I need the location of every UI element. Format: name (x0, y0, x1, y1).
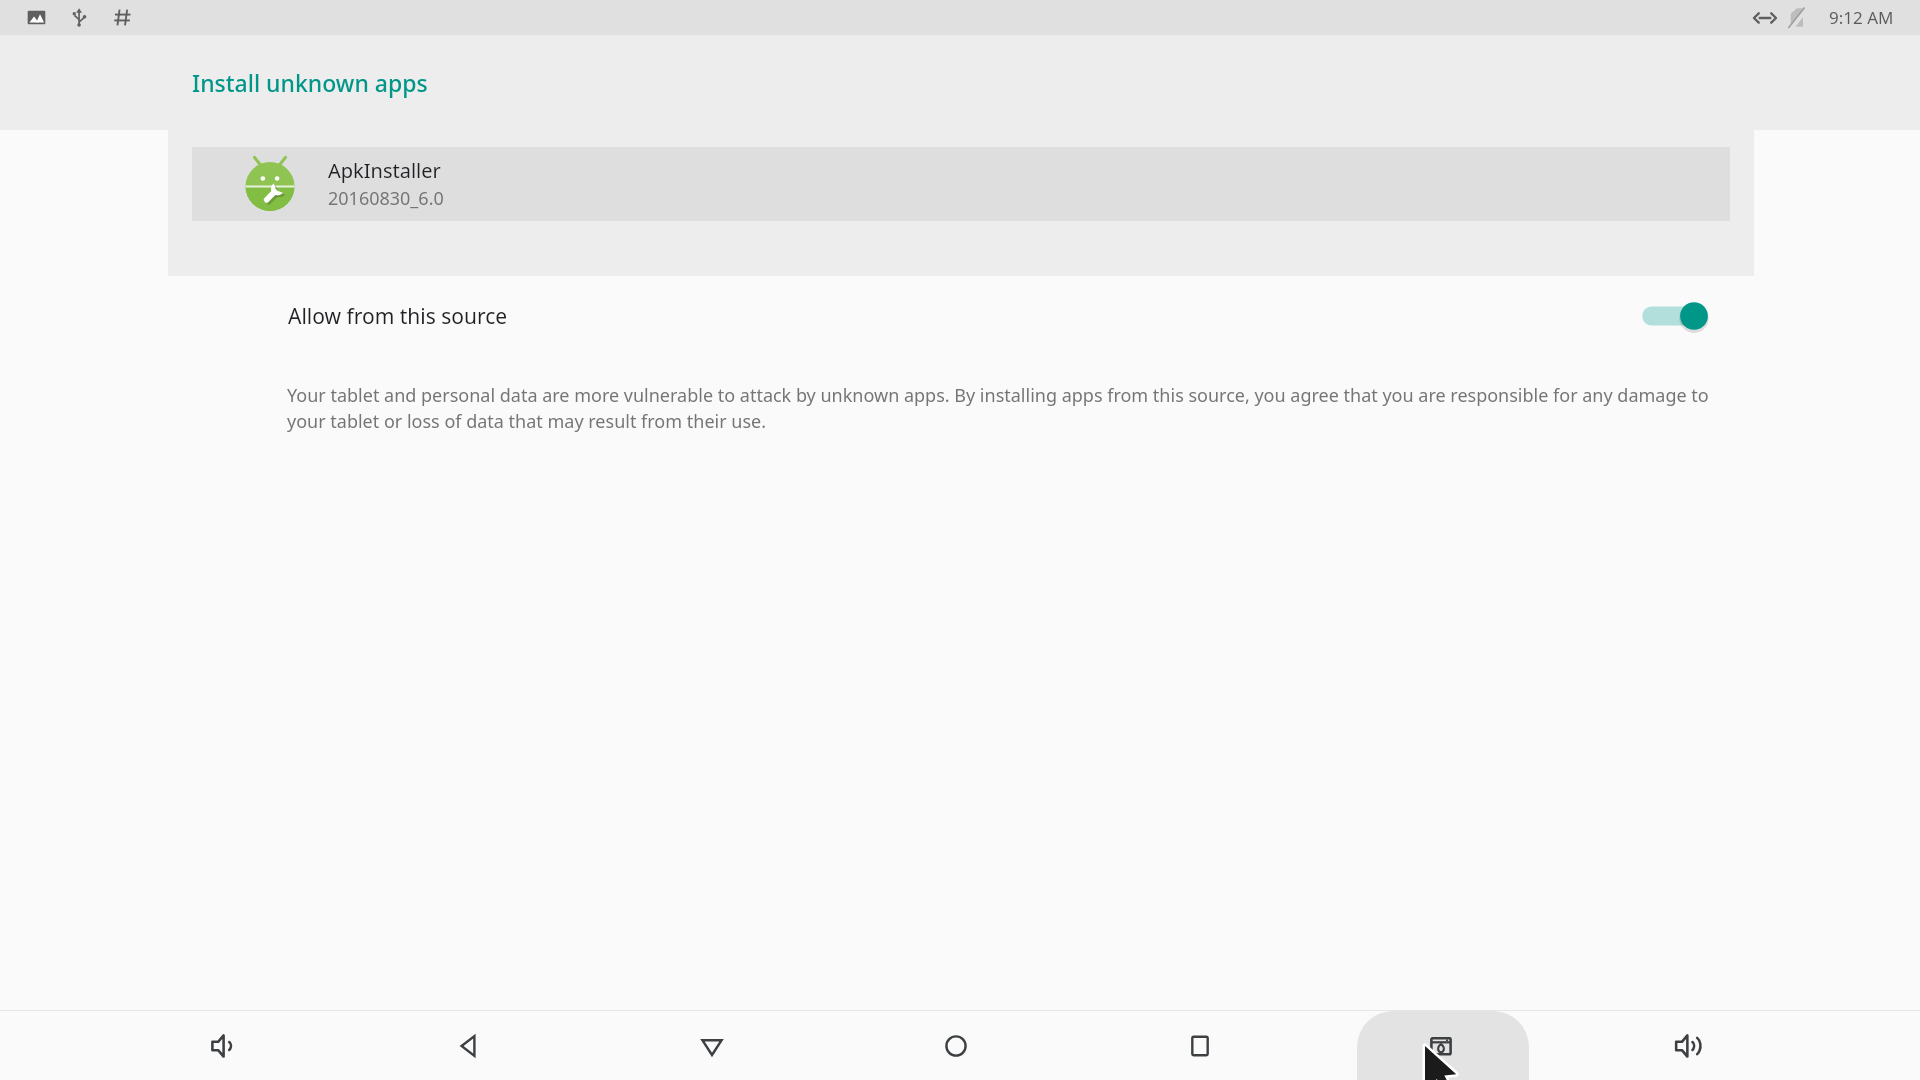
staticText: Allow from this source (288, 302, 508, 331)
staticText: 20160830_6.0 (328, 186, 444, 211)
button[interactable]: Hide keyboard (680, 1011, 744, 1080)
staticText: Your tablet and personal data are more v… (287, 383, 1711, 433)
button[interactable]: Allow from this source (0, 278, 1920, 354)
button[interactable]: Screenshot (1409, 1011, 1473, 1080)
staticText: ApkInstaller (328, 157, 441, 184)
staticText: Install unknown apps (192, 67, 428, 98)
button[interactable]: Home (924, 1011, 988, 1080)
button[interactable]: ApkInstaller (192, 147, 1730, 221)
button[interactable]: Recent apps (1168, 1011, 1232, 1080)
staticText: 9:12 AM (1829, 6, 1894, 29)
button[interactable]: Volume down (190, 1011, 254, 1080)
button[interactable]: Volume up (1656, 1011, 1720, 1080)
button[interactable]: Back (436, 1011, 500, 1080)
